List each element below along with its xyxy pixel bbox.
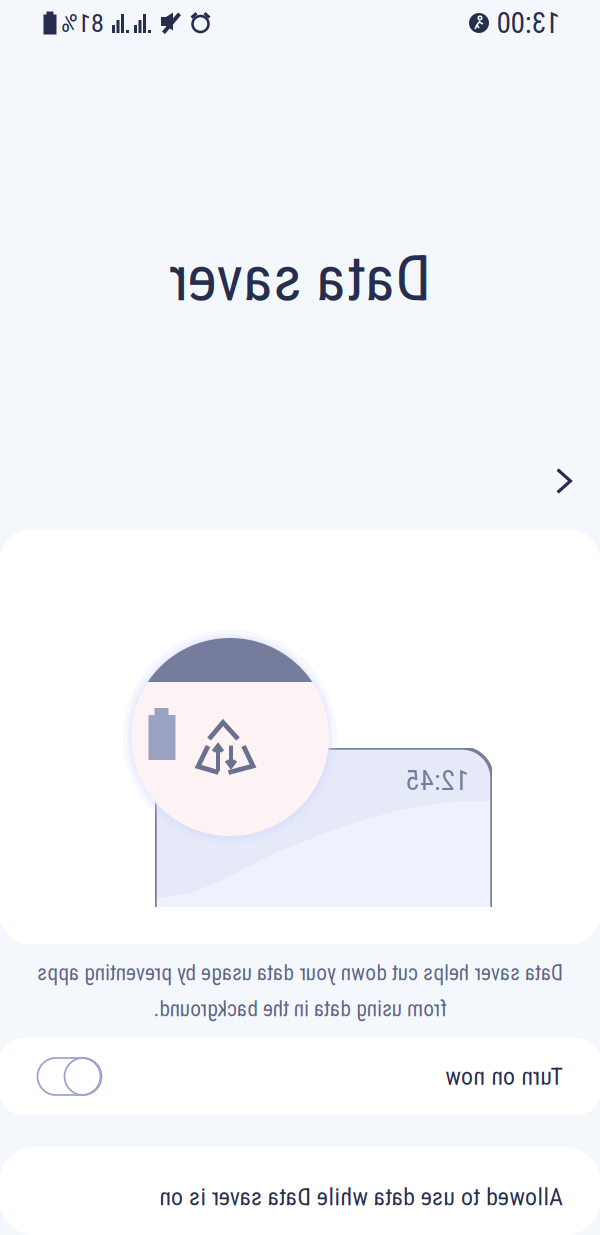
- staticText: Data saver: [169, 242, 431, 315]
- staticText: 13:00: [497, 6, 560, 40]
- button[interactable]: Next: [0, 445, 600, 517]
- staticText: Data saver helps cut down your data usag…: [37, 960, 563, 985]
- staticText: 12:45: [406, 764, 469, 797]
- staticText: from using data in the background.: [153, 996, 447, 1021]
- staticText: Allowed to use data while Data saver is …: [159, 1183, 563, 1211]
- button[interactable]: Turn on now: [0, 1038, 600, 1115]
- staticText: 81%: [61, 7, 104, 39]
- staticText: Turn on now: [445, 1062, 563, 1090]
